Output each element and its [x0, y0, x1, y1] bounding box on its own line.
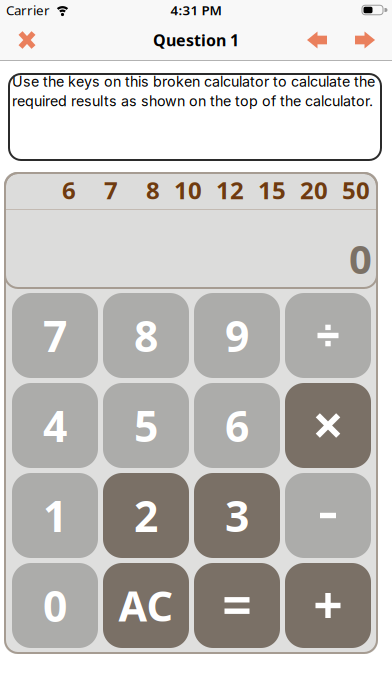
staticText: 7	[43, 307, 67, 364]
button[interactable]: 0	[12, 563, 98, 648]
staticText: 1	[43, 487, 67, 544]
staticText: 6	[62, 174, 76, 206]
staticText: 20	[300, 174, 328, 206]
staticText: AC	[118, 578, 173, 633]
button[interactable]: Next question	[355, 31, 392, 48]
button[interactable]: Divide	[285, 293, 371, 378]
button[interactable]: 3	[194, 473, 280, 558]
staticText: 8	[134, 307, 158, 364]
staticText: 0	[43, 577, 67, 634]
button[interactable]: Multiply	[285, 383, 371, 468]
staticText: 4:31 PM	[170, 1, 221, 19]
button[interactable]: 2	[103, 473, 189, 558]
staticText: 8	[146, 174, 160, 206]
staticText: Carrier	[6, 1, 50, 19]
button[interactable]: 6	[194, 383, 280, 468]
staticText: 6	[225, 397, 249, 454]
button[interactable]: Equals	[194, 563, 280, 648]
staticText: Question 1	[153, 29, 239, 51]
button[interactable]: Close	[0, 31, 35, 48]
button[interactable]: 7	[12, 293, 98, 378]
staticText: Use the keys on this broken calculator t…	[12, 73, 375, 110]
staticText: 5	[134, 397, 158, 454]
button[interactable]: Subtract	[285, 473, 371, 558]
button[interactable]: 8	[103, 293, 189, 378]
button[interactable]: Previous question	[307, 31, 327, 48]
staticText: 0	[349, 232, 372, 285]
button[interactable]: 1	[12, 473, 98, 558]
button[interactable]: 5	[103, 383, 189, 468]
staticText: 7	[104, 174, 118, 206]
staticText: 3	[225, 487, 249, 544]
staticText: 10	[174, 174, 202, 206]
button[interactable]: AC	[103, 563, 189, 648]
staticText: 2	[134, 487, 158, 544]
staticText: 12	[216, 174, 244, 206]
button[interactable]: 9	[194, 293, 280, 378]
button[interactable]: Add	[285, 563, 371, 648]
staticText: 4	[43, 397, 67, 454]
staticText: 9	[225, 307, 249, 364]
button[interactable]: 4	[12, 383, 98, 468]
staticText: 15	[258, 174, 286, 206]
staticText: 50	[342, 174, 370, 206]
